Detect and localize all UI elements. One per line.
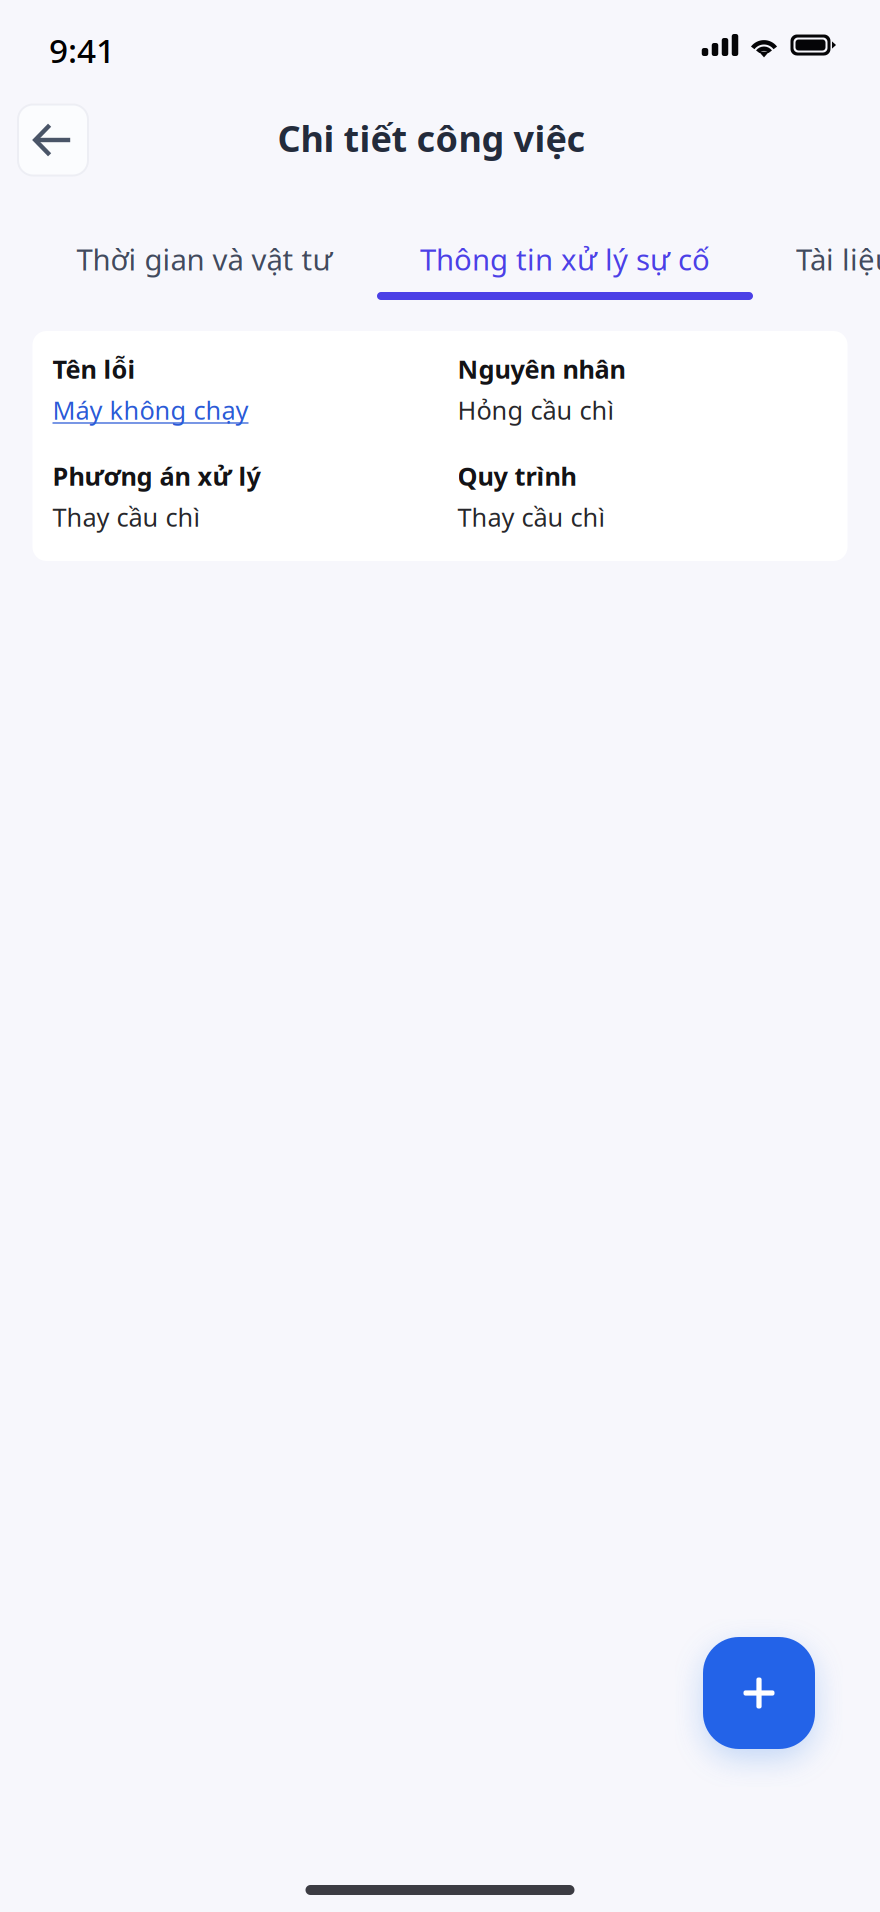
- staticText: Thông tin xử lý sự cố: [420, 239, 710, 278]
- staticText: Chi tiết công việc: [277, 114, 585, 162]
- button[interactable]: Máy không chạy: [52, 395, 248, 425]
- button[interactable]: Add: [703, 1637, 815, 1749]
- staticText: 9:41: [49, 28, 115, 72]
- staticText: Máy không chạy: [52, 393, 248, 427]
- staticText: Tên lỗi: [52, 352, 135, 386]
- button[interactable]: Tài liệu: [753, 226, 880, 300]
- staticText: Phương án xử lý: [52, 459, 260, 493]
- button[interactable]: Thông tin xử lý sự cố: [377, 226, 753, 300]
- staticText: Hỏng cầu chì: [457, 393, 614, 427]
- staticText: Tài liệu: [796, 239, 880, 278]
- staticText: Thay cầu chì: [457, 500, 605, 534]
- staticText: Nguyên nhân: [457, 352, 625, 386]
- button[interactable]: Back: [18, 104, 88, 175]
- staticText: Thời gian và vật tư: [76, 239, 332, 278]
- staticText: Thay cầu chì: [52, 500, 200, 534]
- staticText: Quy trình: [457, 459, 576, 493]
- button[interactable]: Thời gian và vật tư: [32, 226, 377, 300]
